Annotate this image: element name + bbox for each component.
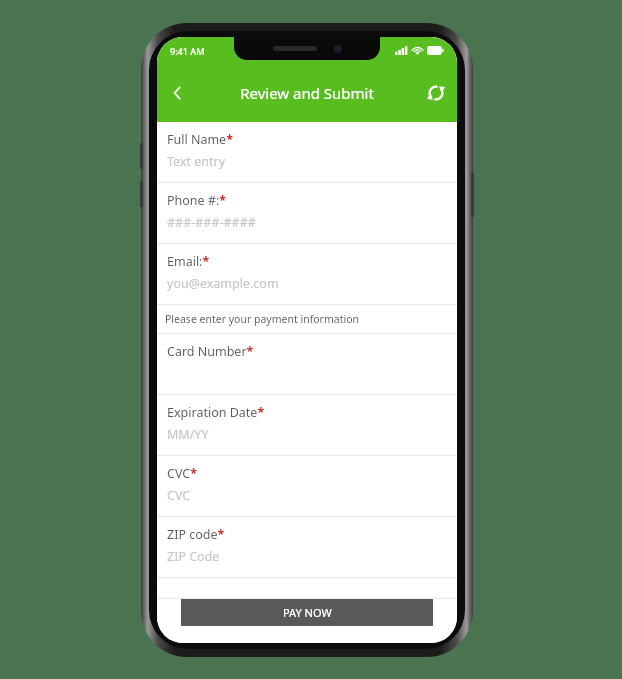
- staticText: Email:*: [167, 253, 210, 270]
- staticText: ZIP code*: [167, 526, 225, 543]
- staticText: Expiration Date*: [167, 404, 265, 421]
- button[interactable]: CVC*: [157, 456, 457, 516]
- button[interactable]: PAY NOW: [181, 599, 433, 626]
- button[interactable]: Refresh: [415, 72, 457, 114]
- staticText: PAY NOW: [283, 605, 332, 620]
- staticText: Full Name*: [167, 131, 233, 148]
- staticText: ZIP Code: [167, 548, 220, 565]
- button[interactable]: Card Number*: [157, 334, 457, 394]
- button[interactable]: Expiration Date*: [157, 395, 457, 455]
- button[interactable]: Phone #:*: [157, 183, 457, 243]
- staticText: CVC: [167, 487, 191, 504]
- staticText: 9:41 AM: [170, 45, 205, 57]
- staticText: Phone #:*: [167, 192, 227, 209]
- button[interactable]: Full Name*: [157, 122, 457, 182]
- staticText: Text entry: [167, 153, 226, 170]
- staticText: Please enter your payment information: [165, 312, 360, 326]
- staticText: Card Number*: [167, 343, 254, 360]
- staticText: MM/YY: [167, 426, 209, 443]
- button[interactable]: Please enter your payment information: [157, 305, 457, 333]
- staticText: Review and Submit: [199, 83, 415, 103]
- staticText: you@example.com: [167, 275, 279, 292]
- staticText: ###-###-####: [167, 214, 256, 231]
- button[interactable]: Email:*: [157, 244, 457, 304]
- button[interactable]: Back: [157, 72, 199, 114]
- staticText: CVC*: [167, 465, 197, 482]
- button[interactable]: ZIP code*: [157, 517, 457, 577]
